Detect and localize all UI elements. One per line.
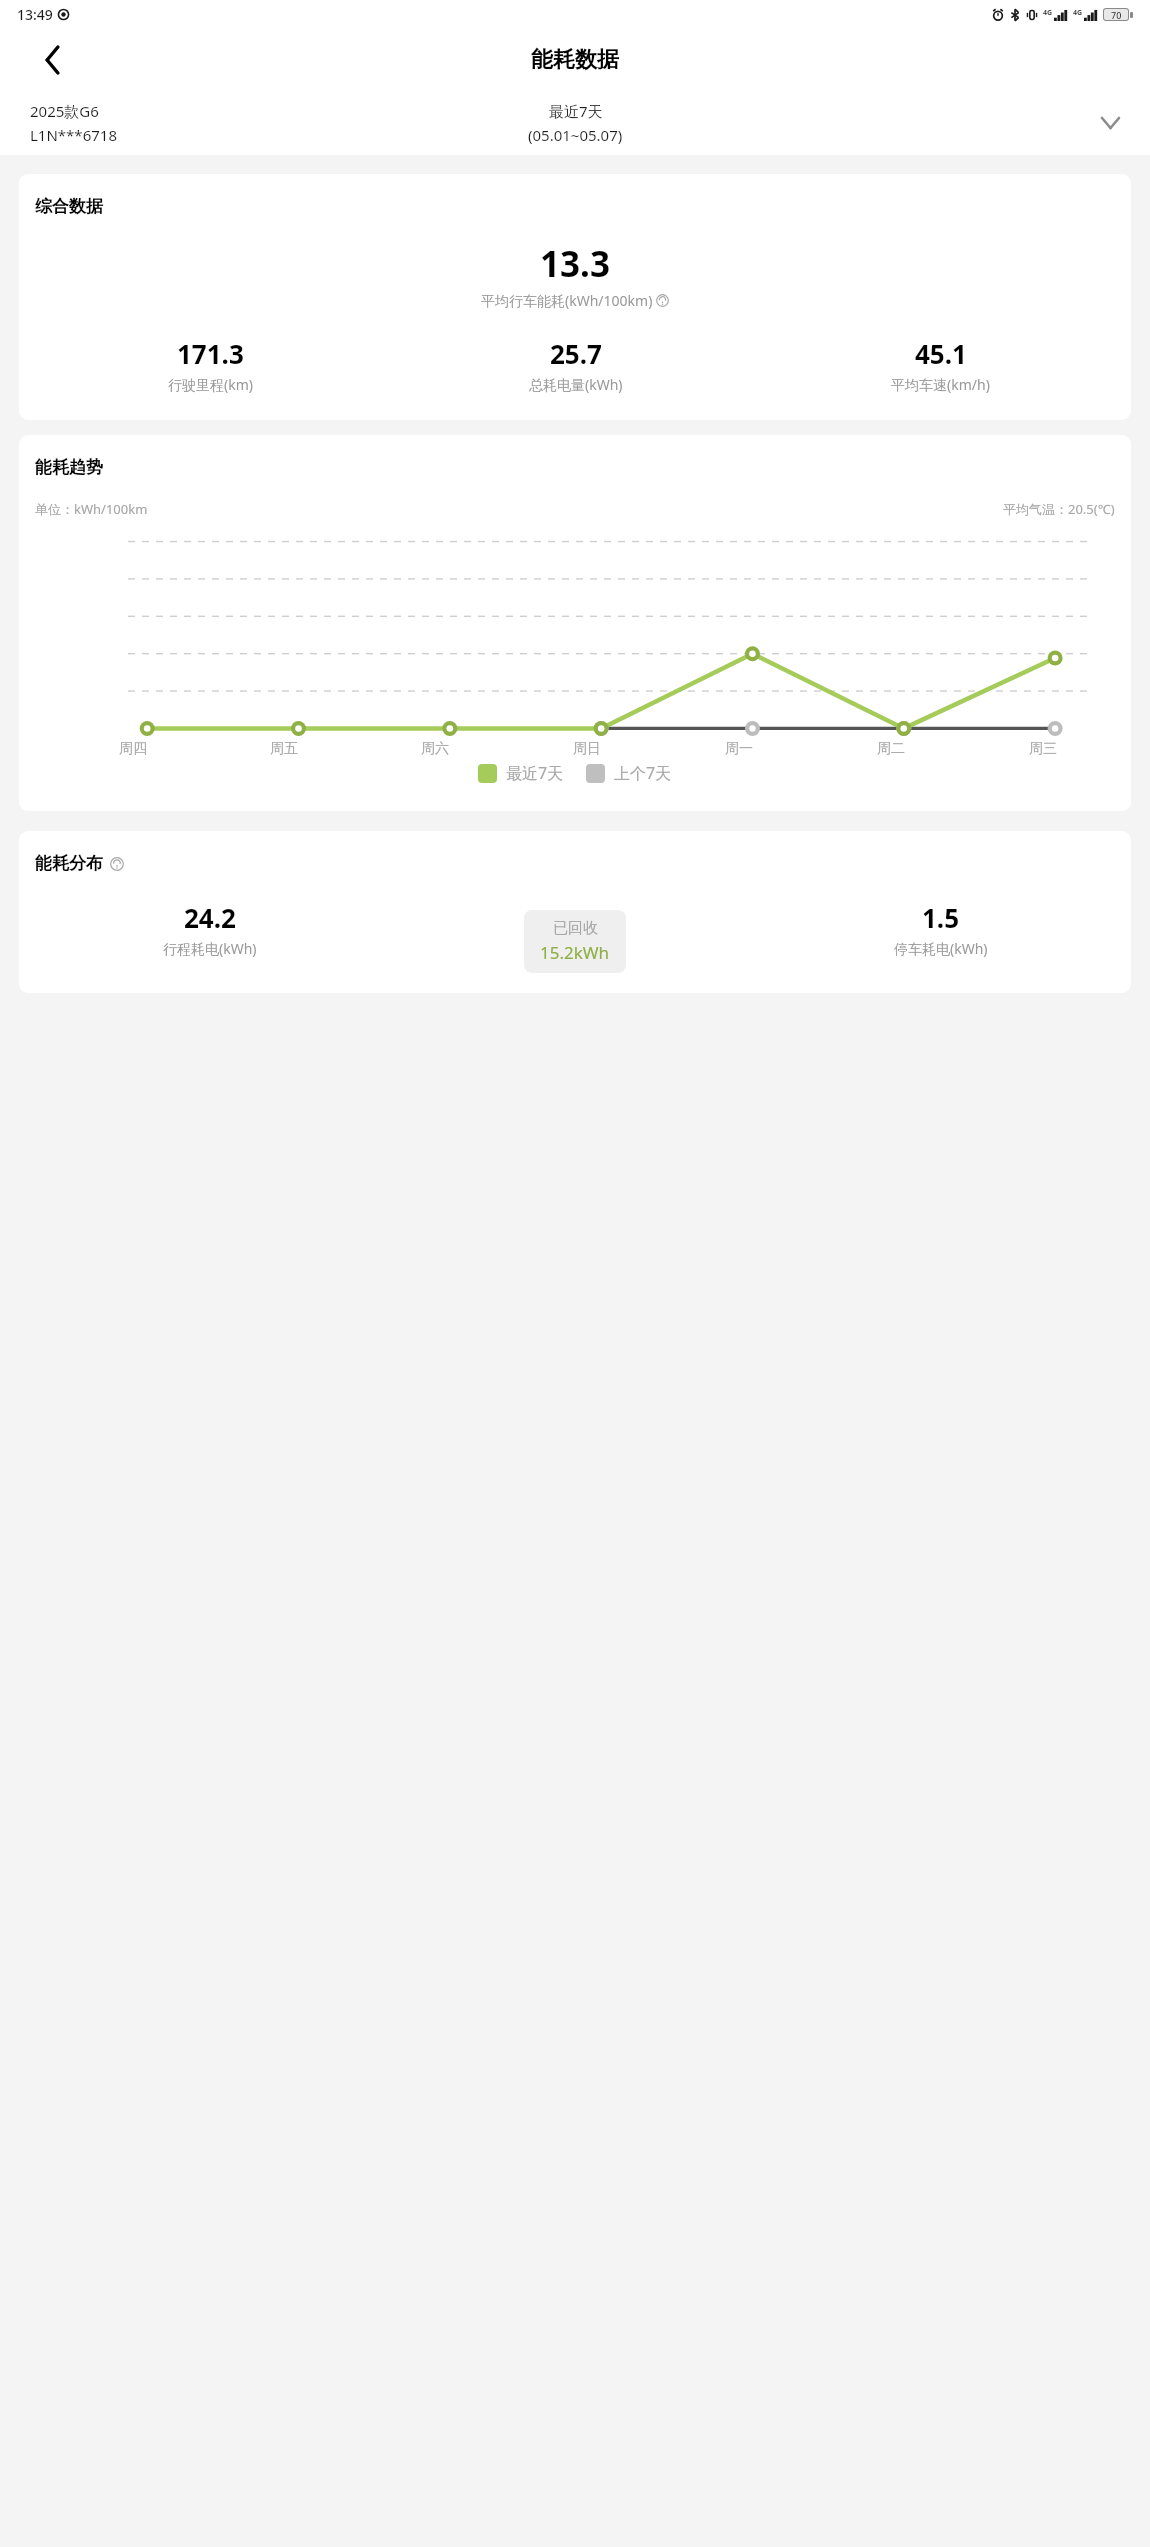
button[interactable]: 2025款G6: [0, 90, 1150, 155]
other: Expand: [1093, 106, 1127, 140]
staticText: 停车耗电(kWh): [894, 939, 988, 958]
staticText: 周五: [270, 740, 298, 758]
staticText: 平均车速(km/h): [891, 375, 990, 394]
staticText: 已回收: [553, 919, 598, 938]
staticText: 周四: [119, 740, 147, 758]
staticText: 综合数据: [35, 196, 103, 217]
staticText: 24.2: [184, 900, 236, 935]
staticText: 周三: [1029, 740, 1057, 758]
button[interactable]: Back: [30, 37, 76, 83]
staticText: 最近7天: [549, 101, 603, 121]
staticText: 171.3: [177, 336, 244, 371]
staticText: 周二: [877, 740, 905, 758]
staticText: 15.2kWh: [540, 941, 610, 964]
staticText: 能耗分布: [35, 853, 103, 874]
staticText: 单位：kWh/100km: [35, 500, 148, 518]
staticText: 45.1: [915, 336, 967, 371]
staticText: 13.3: [540, 240, 610, 288]
staticText: 4G: [1043, 8, 1053, 18]
staticText: 行程耗电(kWh): [163, 939, 257, 958]
staticText: 周日: [573, 740, 601, 758]
staticText: 最近7天: [506, 762, 564, 784]
staticText: 周六: [421, 740, 449, 758]
staticText: 平均气温：20.5(℃): [1003, 500, 1115, 518]
staticText: 70: [1111, 9, 1122, 20]
staticText: L1N***6718: [30, 125, 117, 145]
staticText: 1.5: [922, 900, 960, 935]
staticText: 25.7: [550, 336, 602, 371]
staticText: 2025款G6: [30, 101, 99, 121]
staticText: 能耗趋势: [35, 457, 103, 478]
staticText: 13:49: [17, 5, 53, 24]
staticText: (05.01~05.07): [528, 125, 623, 145]
staticText: 上个7天: [614, 762, 672, 784]
staticText: 4G: [1073, 8, 1083, 18]
staticText: 平均行车能耗(kWh/100km): [481, 291, 653, 310]
staticText: 总耗电量(kWh): [529, 375, 623, 394]
staticText: 周一: [725, 740, 753, 758]
staticText: 能耗数据: [531, 46, 619, 74]
staticText: 行驶里程(km): [168, 375, 253, 394]
